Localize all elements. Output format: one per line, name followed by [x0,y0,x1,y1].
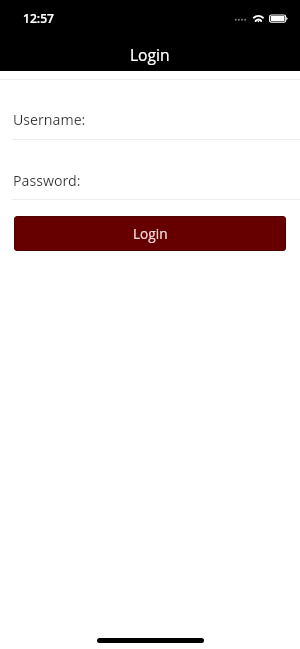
button[interactable]: Login [0,40,300,68]
other: Wi-Fi [252,13,266,24]
staticText: Password: [13,171,81,190]
staticText: Username: [13,110,86,129]
staticText: Login [133,224,168,243]
other: Cellular signal [235,14,250,24]
button[interactable]: Login [14,216,286,251]
staticText: 12:57 [23,10,54,26]
staticText: Login [130,44,170,65]
other: Battery full [268,13,290,25]
